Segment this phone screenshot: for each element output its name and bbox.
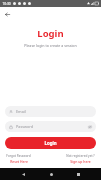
button[interactable]: Back	[3, 10, 12, 19]
staticText: Login	[0, 27, 101, 40]
button[interactable]: Forgot Password	[6, 154, 31, 164]
staticText: Sign up here	[70, 159, 91, 164]
button[interactable]: Email	[5, 106, 96, 117]
button[interactable]: Home	[46, 169, 56, 179]
button[interactable]: Recent apps	[73, 169, 83, 179]
staticText: Please login to create a session	[0, 43, 101, 48]
staticText: Login	[44, 140, 57, 146]
button[interactable]: Back	[18, 169, 28, 179]
staticText: 10:30	[2, 2, 11, 6]
staticText: Not registered yet ?	[66, 154, 95, 158]
staticText: Reset Here	[10, 159, 28, 164]
button[interactable]: Login	[5, 137, 96, 149]
staticText: Password	[16, 124, 87, 129]
button[interactable]: Password	[5, 121, 96, 132]
button[interactable]: Show password	[87, 124, 92, 129]
button[interactable]: Not registered yet ?	[66, 154, 95, 164]
staticText: Email	[16, 109, 92, 114]
staticText: Forgot Password	[6, 154, 31, 158]
